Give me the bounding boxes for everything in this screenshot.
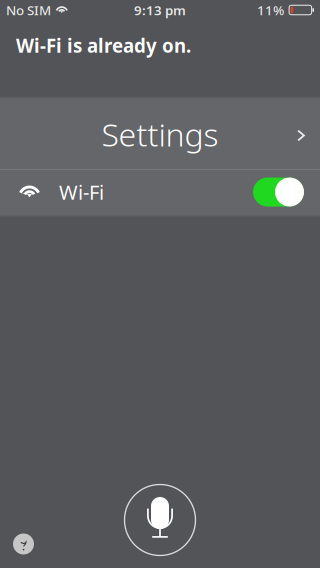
button[interactable]: Siri help [6, 527, 40, 561]
button[interactable]: Wi-Fi [0, 170, 320, 214]
button[interactable]: Settings [0, 99, 320, 169]
staticText: Wi-Fi [59, 179, 104, 205]
staticText: 11% [257, 1, 284, 19]
staticText: No SIM [6, 1, 51, 19]
staticText: Wi-Fi is already on. [16, 33, 191, 58]
staticText: 9:13 pm [134, 1, 186, 19]
button[interactable]: Talk to Siri [116, 476, 204, 564]
staticText: Settings [101, 113, 218, 155]
